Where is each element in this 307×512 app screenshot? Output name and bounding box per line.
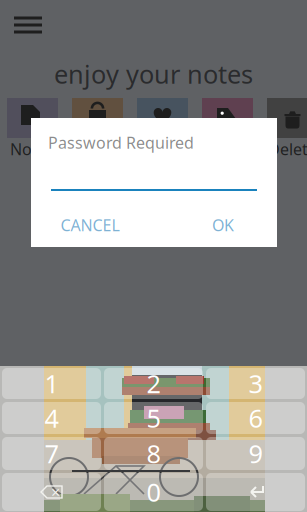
button[interactable]: 4	[2, 402, 101, 434]
staticText: Locked	[73, 128, 122, 170]
button[interactable]: OK	[203, 212, 243, 238]
staticText: 4	[44, 401, 58, 435]
staticText: Favs	[146, 138, 179, 160]
button[interactable]: Menu	[8, 8, 48, 42]
button[interactable]: Notes	[7, 98, 58, 160]
staticText: ×	[51, 481, 60, 503]
staticText: Delete	[268, 138, 307, 160]
button[interactable]: Favs	[137, 98, 188, 160]
button[interactable]: 7	[2, 437, 101, 470]
staticText: 6	[248, 401, 262, 435]
staticText: 5	[146, 401, 160, 435]
staticText: 9	[248, 437, 262, 470]
button[interactable]: 3	[206, 368, 305, 399]
button[interactable]: 6	[206, 402, 305, 434]
button[interactable]: 8	[104, 437, 203, 470]
button[interactable]: Delete	[267, 98, 307, 160]
button[interactable]: 2	[104, 368, 203, 399]
staticText: Notes	[10, 138, 55, 160]
button[interactable]: 0	[104, 473, 203, 511]
staticText: 7	[44, 437, 58, 470]
staticText: CANCEL	[60, 214, 119, 236]
button[interactable]: CANCEL	[54, 212, 126, 238]
staticText: 3	[248, 367, 262, 400]
button[interactable]: Locked	[72, 98, 123, 160]
button[interactable]: Tags	[202, 98, 253, 160]
button[interactable]: 9	[206, 437, 305, 470]
staticText: 2	[146, 367, 160, 400]
staticText: OK	[212, 214, 234, 236]
button[interactable]: 5	[104, 402, 203, 434]
button[interactable]: Delete	[2, 473, 101, 511]
staticText: 0	[146, 475, 160, 509]
button[interactable]: 1	[2, 368, 101, 399]
staticText: Password Required	[48, 132, 194, 153]
staticText: 8	[146, 437, 160, 470]
staticText: 1	[44, 367, 58, 400]
button[interactable]: Enter	[206, 473, 305, 511]
staticText: enjoy your notes	[54, 57, 253, 91]
